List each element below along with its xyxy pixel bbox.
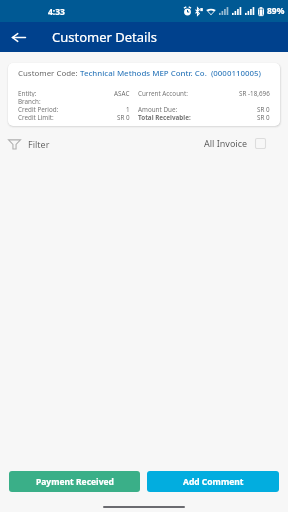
staticText: 1 (126, 105, 130, 113)
button[interactable]: Add Comment (147, 471, 279, 492)
staticText: SR -18,696 (239, 89, 270, 97)
staticText: Add Comment (183, 476, 244, 488)
staticText: SR 0 (117, 113, 130, 121)
staticText: Current Account: (138, 89, 188, 97)
staticText: Payment Received (36, 476, 114, 488)
staticText: 89% (267, 5, 285, 17)
staticText: ASAC (114, 89, 130, 97)
staticText: Amount Due: (138, 105, 178, 113)
staticText: Customer Code: (18, 68, 80, 79)
staticText: Customer Details (52, 28, 158, 46)
staticText: SR 0 (257, 113, 270, 121)
button[interactable]: Back (5, 24, 31, 50)
staticText: Filter (28, 138, 50, 150)
button[interactable]: All Invoice (204, 137, 266, 149)
button[interactable]: Payment Received (9, 471, 140, 492)
button[interactable]: Technical Methods MEP Contr. Co. (000011… (80, 68, 261, 79)
staticText: Entity: (18, 89, 37, 97)
staticText: Credit Period: (18, 105, 59, 113)
staticText: All Invoice (204, 137, 248, 149)
staticText: Credit Limit: (18, 113, 54, 121)
staticText: Branch: (18, 97, 41, 105)
staticText: 4:33 (48, 6, 65, 18)
button[interactable]: Filter (8, 137, 50, 150)
staticText: SR 0 (257, 105, 270, 113)
staticText: Total Receivable: (138, 113, 191, 121)
